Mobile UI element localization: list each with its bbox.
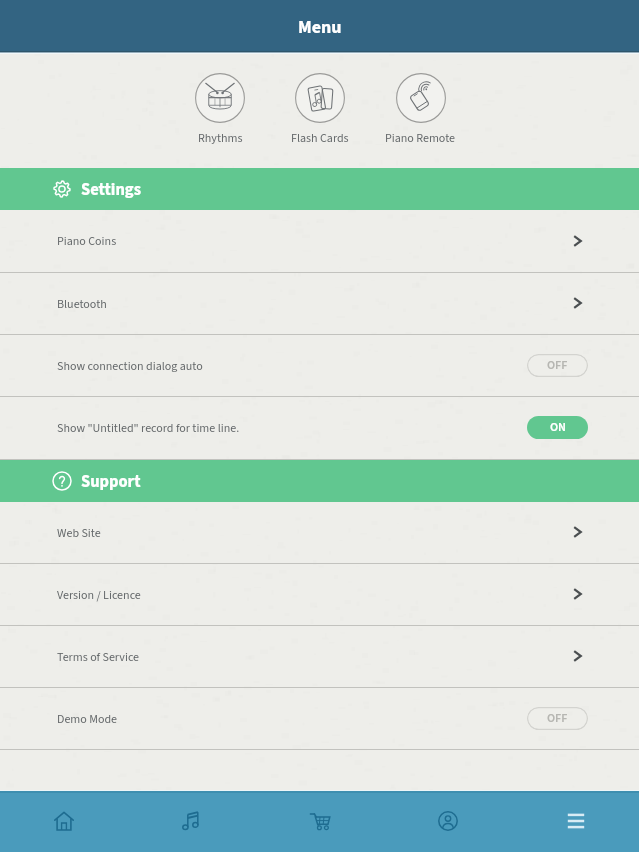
button[interactable]: Bluetooth xyxy=(0,273,639,335)
button[interactable]: Piano Remote xyxy=(385,73,456,147)
button[interactable]: Demo Mode xyxy=(0,688,639,750)
staticText: Settings xyxy=(81,178,141,201)
staticText: Flash Cards xyxy=(291,130,349,147)
button[interactable]: Web Site xyxy=(0,502,639,564)
button[interactable]: ON xyxy=(527,416,588,439)
button[interactable]: Menu xyxy=(512,790,639,852)
staticText: Bluetooth xyxy=(57,296,107,313)
staticText: OFF xyxy=(547,357,568,374)
staticText: Demo Mode xyxy=(57,711,118,728)
button[interactable]: Flash Cards xyxy=(291,73,349,147)
button[interactable]: Show connection dialog auto xyxy=(0,335,639,397)
staticText: Support xyxy=(81,470,141,493)
staticText: Web Site xyxy=(57,525,101,542)
button[interactable]: Settings xyxy=(0,168,639,210)
staticText: Piano Remote xyxy=(385,130,456,147)
button[interactable]: Account xyxy=(384,790,512,852)
button[interactable]: Rhythms xyxy=(195,73,245,147)
button[interactable]: Terms of Service xyxy=(0,626,639,688)
staticText: Piano Coins xyxy=(57,233,117,250)
button[interactable]: OFF xyxy=(527,707,588,730)
button[interactable]: Support xyxy=(0,460,639,502)
staticText: Show "Untitled" record for time line. xyxy=(57,420,240,437)
staticText: Menu xyxy=(298,15,342,41)
staticText: Rhythms xyxy=(198,130,243,147)
staticText: Version / Licence xyxy=(57,587,141,604)
staticText: ON xyxy=(550,419,566,436)
button[interactable]: Shop xyxy=(256,790,384,852)
button[interactable]: Version / Licence xyxy=(0,564,639,626)
button[interactable]: Music xyxy=(128,790,256,852)
button[interactable]: Show "Untitled" record for time line. xyxy=(0,397,639,460)
button[interactable]: Piano Coins xyxy=(0,210,639,273)
staticText: Terms of Service xyxy=(57,649,140,666)
button[interactable]: OFF xyxy=(527,354,588,377)
staticText: Show connection dialog auto xyxy=(57,358,203,375)
button[interactable]: Home xyxy=(0,790,128,852)
staticText: OFF xyxy=(547,710,568,727)
